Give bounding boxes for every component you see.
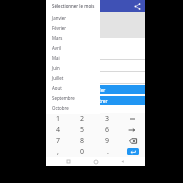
staticText: Regarder bbox=[85, 87, 106, 93]
staticText: bre (m3) bbox=[49, 75, 65, 80]
button[interactable]: Juin bbox=[52, 63, 100, 73]
staticText: Enregistrer bbox=[83, 98, 108, 104]
button[interactable]: Octobre bbox=[52, 103, 100, 113]
button[interactable]: Regarder bbox=[46, 85, 145, 94]
button[interactable]: Mars bbox=[52, 33, 100, 43]
staticText: Janvier bbox=[52, 15, 67, 21]
staticText: 7 bbox=[56, 136, 61, 146]
staticText: , bbox=[57, 147, 59, 157]
button[interactable]: Aout bbox=[52, 83, 100, 93]
button[interactable]: , bbox=[46, 146, 70, 157]
staticText: Juin bbox=[52, 65, 60, 71]
button[interactable]: del bbox=[120, 135, 145, 146]
button[interactable]: 4 bbox=[46, 124, 70, 135]
staticText: 9 bbox=[105, 136, 110, 146]
staticText: Mai bbox=[52, 55, 60, 61]
button[interactable]: 9 bbox=[95, 135, 120, 146]
button[interactable]: Juillet bbox=[52, 73, 100, 83]
button[interactable]: 0 bbox=[70, 146, 95, 157]
staticText: Septembre bbox=[52, 95, 75, 101]
button[interactable]: 5 bbox=[70, 124, 95, 135]
button[interactable]: 8 bbox=[70, 135, 95, 146]
staticText: 5 bbox=[80, 125, 85, 135]
staticText: 8 bbox=[80, 136, 85, 146]
button[interactable]: Home bbox=[91, 157, 100, 166]
staticText: 6 bbox=[105, 125, 110, 135]
staticText: Avril bbox=[52, 45, 62, 51]
staticText: . bbox=[107, 147, 109, 157]
button[interactable]: Back bbox=[118, 157, 127, 166]
button[interactable]: Recent apps bbox=[64, 157, 73, 166]
button[interactable]: Janvier bbox=[52, 13, 100, 23]
button[interactable]: 6 bbox=[95, 124, 120, 135]
button[interactable]: (m) bbox=[46, 48, 145, 59]
staticText: 3 bbox=[105, 114, 110, 124]
button[interactable]: - bbox=[120, 114, 145, 124]
staticText: Juillet bbox=[52, 75, 64, 81]
staticText: 0 bbox=[80, 147, 85, 157]
button[interactable]: (m) bbox=[46, 60, 145, 71]
staticText: 2 bbox=[80, 114, 85, 124]
staticText: (m) bbox=[49, 63, 56, 68]
button[interactable]: bre (m3) bbox=[46, 72, 145, 83]
staticText: 1 bbox=[56, 114, 61, 124]
button[interactable]: Enregistrer bbox=[46, 96, 145, 105]
staticText: Octobre bbox=[52, 105, 69, 111]
staticText: Mars bbox=[52, 35, 63, 41]
button[interactable]: 7 bbox=[46, 135, 70, 146]
staticText: Aout bbox=[52, 85, 62, 91]
staticText: Longitude bbox=[58, 16, 79, 22]
button[interactable]: 2 bbox=[70, 114, 95, 124]
button[interactable]: 3 bbox=[95, 114, 120, 124]
button[interactable]: Septembre bbox=[52, 93, 100, 103]
button[interactable]: Share bbox=[132, 1, 142, 11]
button[interactable]: Février bbox=[52, 23, 100, 33]
staticText: Février bbox=[52, 25, 67, 31]
button[interactable]: . bbox=[95, 146, 120, 157]
staticText: 4 bbox=[56, 125, 61, 135]
staticText: Latitude bbox=[58, 27, 75, 33]
button[interactable]: Mai bbox=[52, 53, 100, 63]
button[interactable]: Longitude bbox=[46, 12, 145, 38]
button[interactable]: 1 bbox=[46, 114, 70, 124]
staticText: Sélectionner le mois bbox=[52, 3, 95, 9]
button[interactable]: Avril bbox=[52, 43, 100, 53]
button[interactable]: ok bbox=[120, 146, 145, 157]
button[interactable]: tab bbox=[120, 124, 145, 135]
